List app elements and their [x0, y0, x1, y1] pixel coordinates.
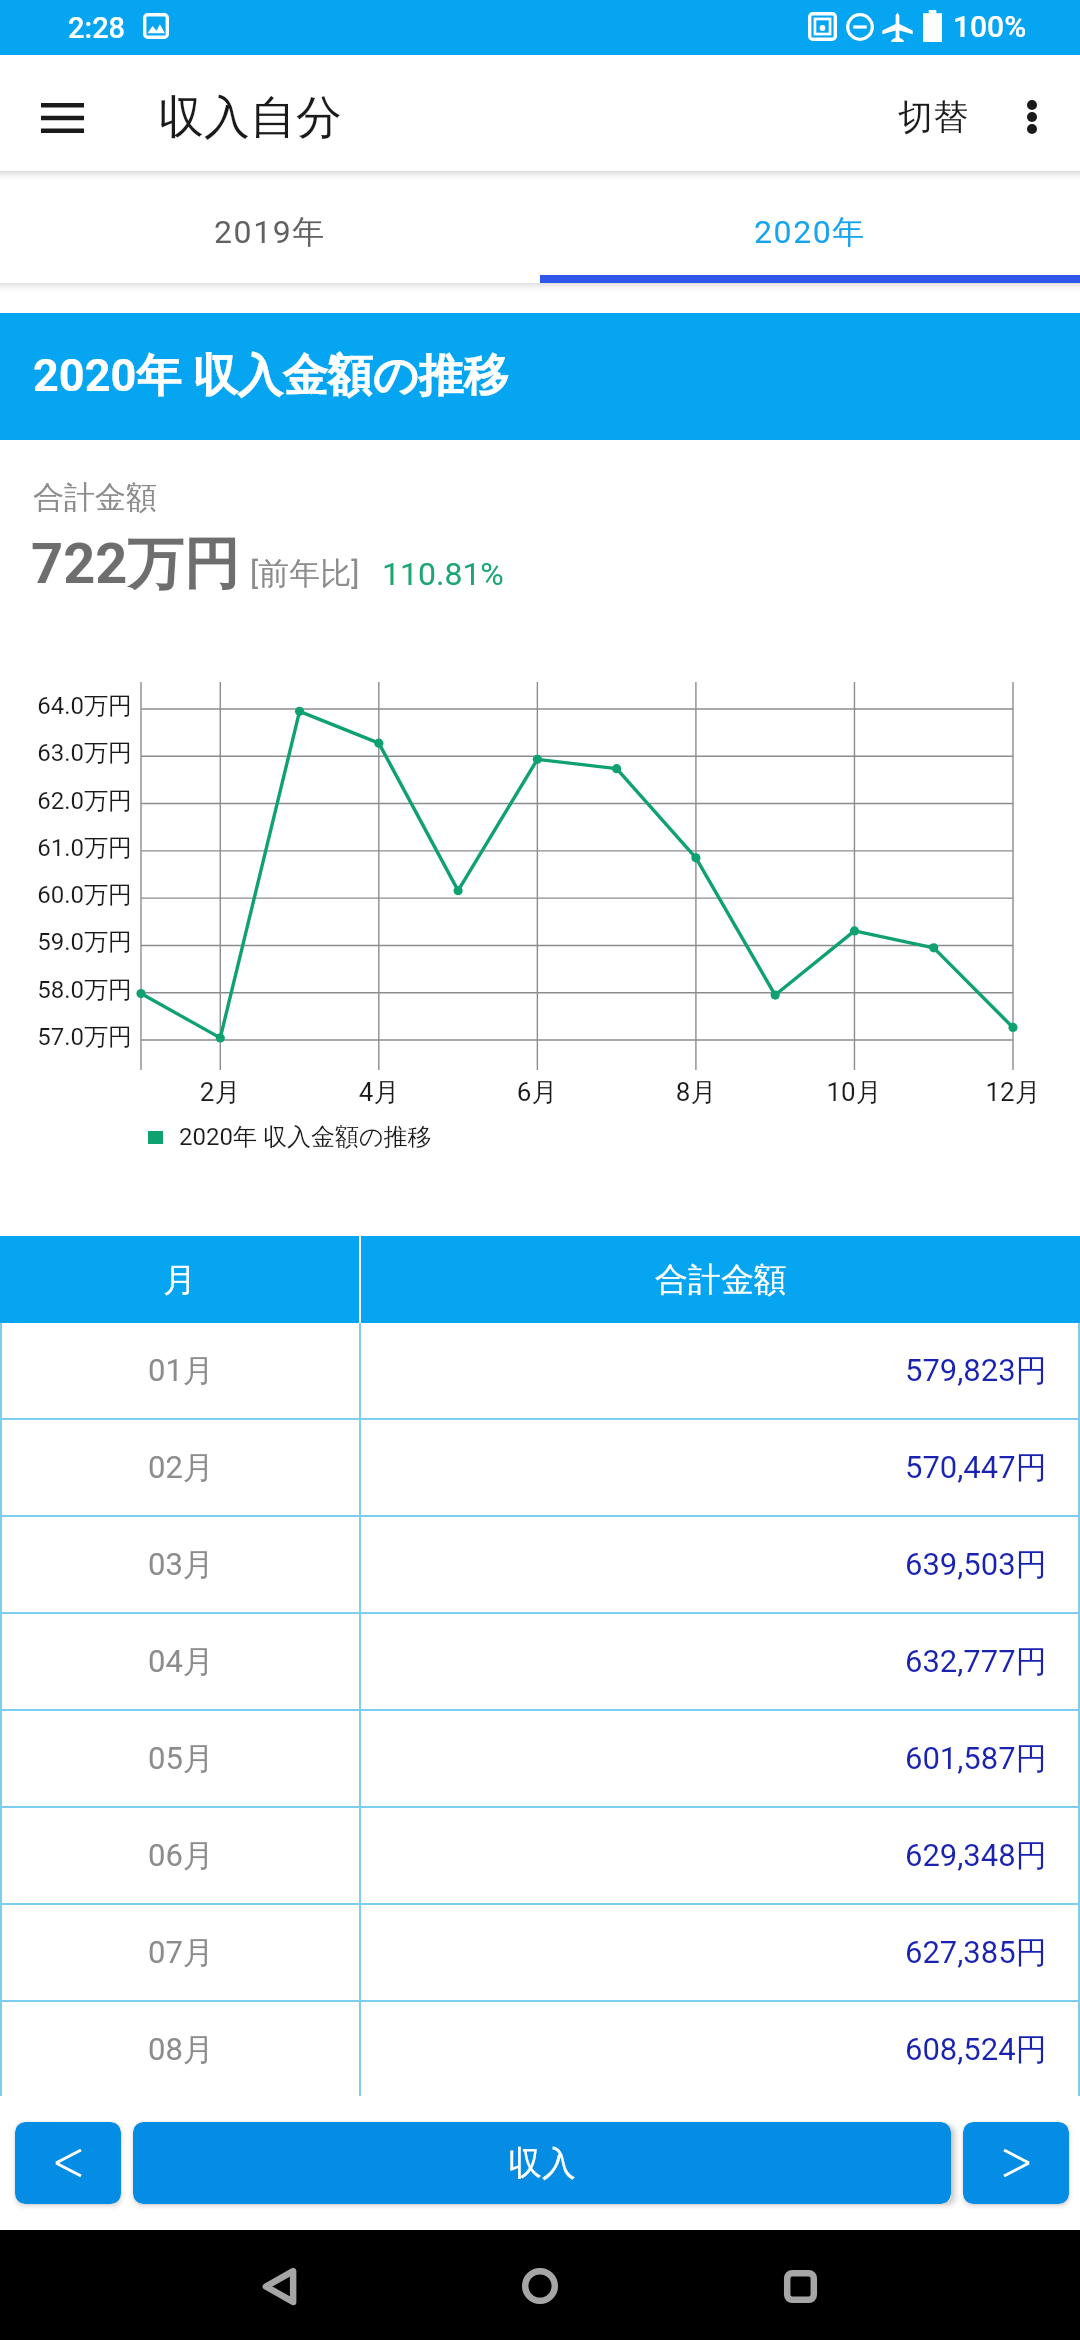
- staticText: 12月: [953, 1076, 1073, 1109]
- button[interactable]: 07月: [0, 1905, 1080, 2000]
- staticText: 収入自分: [158, 89, 342, 147]
- staticText: 59.0万円: [37, 927, 132, 957]
- button[interactable]: 収入: [133, 2122, 951, 2204]
- staticText: 05月: [148, 1739, 214, 1778]
- staticText: 608,524円: [905, 2030, 1047, 2069]
- button[interactable]: Menu: [28, 84, 96, 152]
- staticText: 629,348円: [905, 1836, 1047, 1875]
- staticText: 合計金額: [33, 478, 157, 517]
- staticText: 61.0万円: [37, 833, 132, 863]
- button[interactable]: 2020年: [540, 180, 1080, 283]
- button[interactable]: 05月: [0, 1711, 1080, 1806]
- staticText: 07月: [148, 1933, 214, 1972]
- staticText: 2020年: [754, 212, 866, 252]
- button[interactable]: Home: [480, 2236, 600, 2336]
- staticText: 2月: [160, 1076, 280, 1109]
- staticText: 切替: [898, 95, 968, 139]
- staticText: 08月: [148, 2030, 214, 2069]
- staticText: 579,823円: [905, 1351, 1047, 1390]
- staticText: 58.0万円: [37, 975, 132, 1005]
- button[interactable]: Recent apps: [740, 2236, 860, 2336]
- staticText: 57.0万円: [37, 1022, 132, 1052]
- staticText: 601,587円: [905, 1739, 1047, 1778]
- staticText: 60.0万円: [37, 880, 132, 910]
- staticText: 64.0万円: [37, 691, 132, 721]
- staticText: 月: [163, 1259, 196, 1301]
- staticText: 2:28: [68, 11, 126, 45]
- staticText: 10月: [794, 1076, 914, 1109]
- staticText: 03月: [148, 1545, 214, 1584]
- button[interactable]: More options: [992, 77, 1072, 157]
- staticText: 639,503円: [905, 1545, 1047, 1584]
- staticText: 4月: [319, 1076, 439, 1109]
- staticText: 8月: [636, 1076, 756, 1109]
- staticText: 01月: [148, 1351, 214, 1390]
- button[interactable]: 切替: [883, 77, 983, 157]
- staticText: 632,777円: [905, 1642, 1047, 1681]
- button[interactable]: 03月: [0, 1517, 1080, 1612]
- staticText: 722万円: [31, 529, 240, 600]
- button[interactable]: 02月: [0, 1420, 1080, 1515]
- button[interactable]: 2019年: [0, 180, 540, 283]
- staticText: 2019年: [214, 212, 326, 252]
- button[interactable]: 08月: [0, 2002, 1080, 2096]
- staticText: 62.0万円: [37, 786, 132, 816]
- staticText: 04月: [148, 1642, 214, 1681]
- staticText: 627,385円: [905, 1933, 1047, 1972]
- button[interactable]: 01月: [0, 1323, 1080, 1418]
- staticText: 6月: [477, 1076, 597, 1109]
- staticText: 合計金額: [655, 1259, 787, 1301]
- button[interactable]: Previous: [15, 2122, 121, 2204]
- staticText: 02月: [148, 1448, 214, 1487]
- staticText: 2020年 収入金額の推移: [179, 1122, 432, 1152]
- button[interactable]: Next: [963, 2122, 1069, 2204]
- button[interactable]: Back: [219, 2236, 339, 2336]
- staticText: [前年比]: [250, 554, 360, 593]
- button[interactable]: 06月: [0, 1808, 1080, 1903]
- staticText: 570,447円: [905, 1448, 1047, 1487]
- staticText: 110.81%: [382, 555, 504, 593]
- staticText: 06月: [148, 1836, 214, 1875]
- staticText: 収入: [508, 2142, 576, 2185]
- staticText: 2020年 収入金額の推移: [33, 348, 509, 405]
- staticText: 63.0万円: [37, 738, 132, 768]
- staticText: 100%: [953, 9, 1027, 44]
- button[interactable]: 04月: [0, 1614, 1080, 1709]
